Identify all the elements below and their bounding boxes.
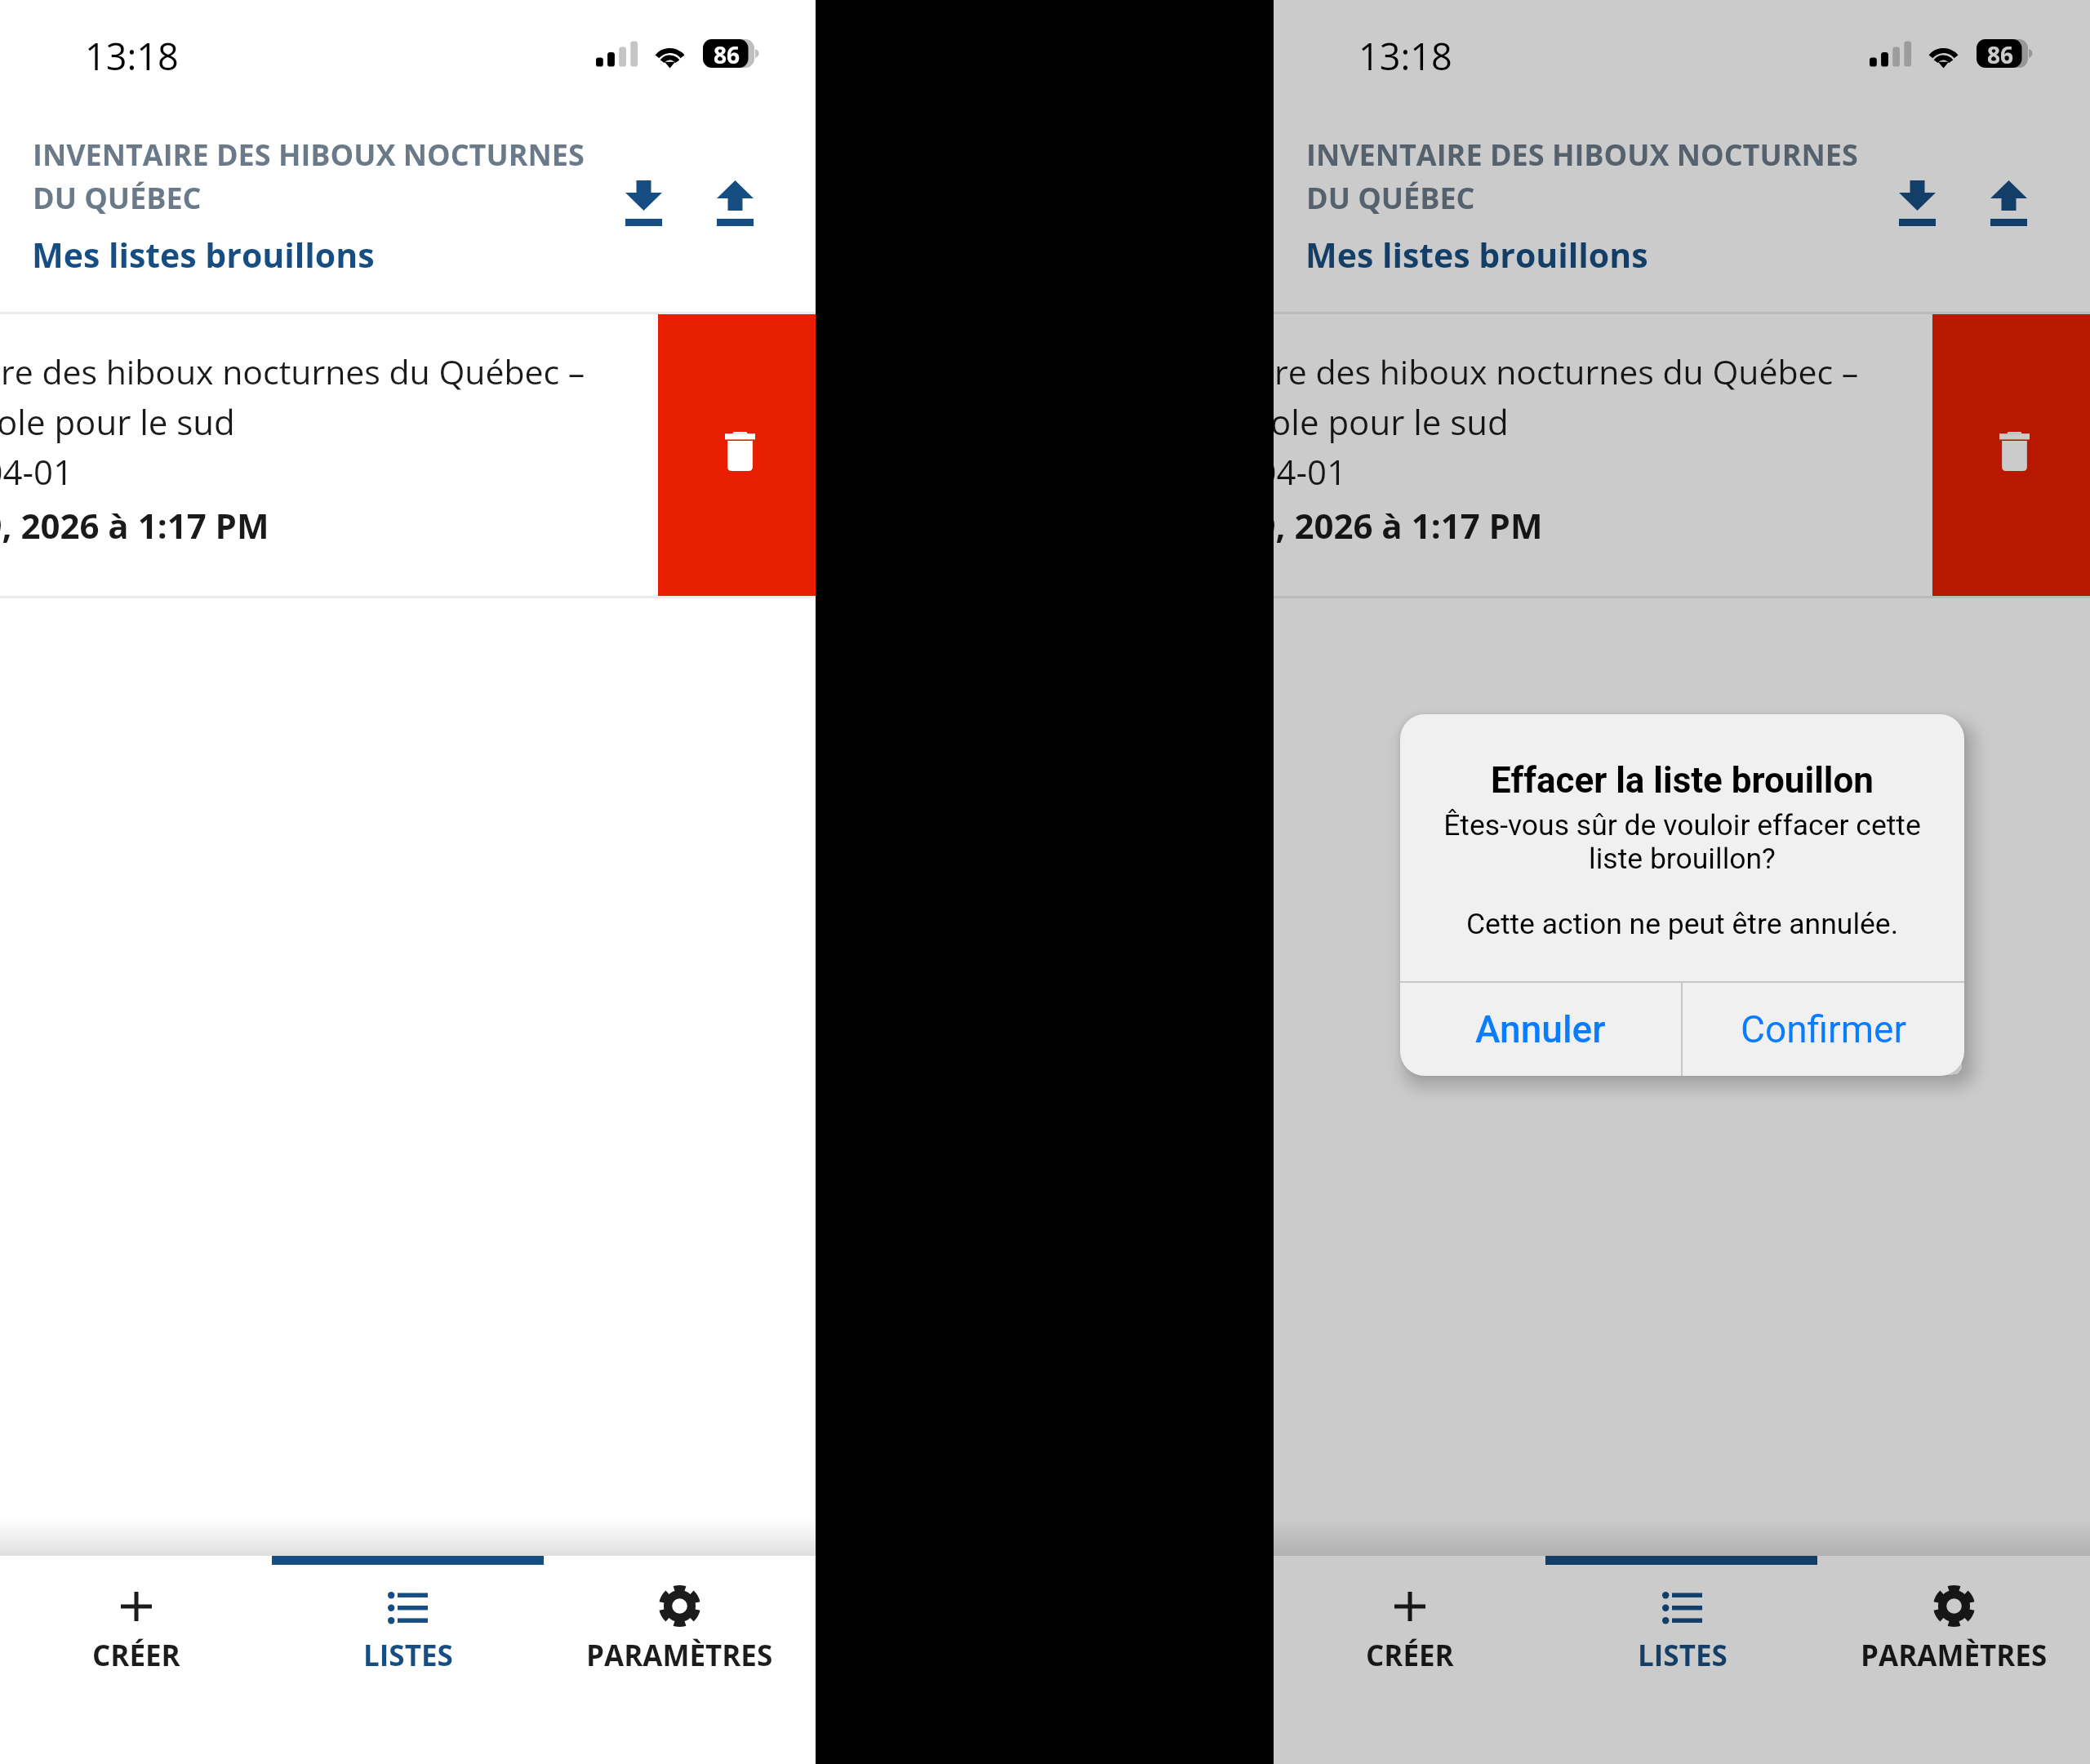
- staticText: INVENTAIRE DES HIBOUX NOCTURNES DU QUÉBE…: [1306, 135, 1858, 217]
- staticText: 13:18: [1358, 31, 1452, 81]
- staticText: Êtes-vous sûr de vouloir effacer cette: [1400, 808, 1964, 842]
- staticText: Avril 9, 2026 à 1:17 PM: [0, 502, 792, 549]
- staticText: liste brouillon?: [1400, 842, 1964, 876]
- staticText: Protocole pour le sud: [0, 398, 790, 445]
- button[interactable]: CRÉER: [1274, 1556, 1546, 1764]
- staticText: 2026-04-01: [1274, 448, 2066, 495]
- staticText: LISTES: [363, 1636, 453, 1675]
- staticText: Mes listes brouillons: [1305, 232, 1648, 278]
- staticText: Avril 9, 2026 à 1:17 PM: [1274, 502, 2066, 549]
- staticText: Inventaire des hiboux nocturnes du Québe…: [0, 349, 774, 394]
- staticText: CRÉER: [92, 1636, 180, 1675]
- button[interactable]: Importer: [1880, 167, 1954, 240]
- staticText: 2026-04-01: [0, 448, 792, 495]
- button[interactable]: LISTES: [1546, 1556, 1818, 1764]
- staticText: Mes listes brouillons: [32, 232, 375, 278]
- button[interactable]: Inventaire des hiboux nocturnes du Québe…: [0, 314, 816, 596]
- button[interactable]: LISTES: [272, 1556, 544, 1764]
- button[interactable]: Inventaire des hiboux nocturnes du Québe…: [1274, 314, 2090, 596]
- button[interactable]: Supprimer: [1932, 314, 2090, 596]
- button[interactable]: Annuler: [1400, 982, 1681, 1076]
- button[interactable]: Confirmer: [1683, 982, 1964, 1076]
- staticText: PARAMÈTRES: [586, 1636, 773, 1675]
- staticText: 86: [714, 39, 740, 70]
- button[interactable]: Exporter: [1972, 167, 2045, 240]
- button[interactable]: Importer: [607, 167, 680, 240]
- staticText: Confirmer: [1741, 1007, 1906, 1051]
- staticText: Inventaire des hiboux nocturnes du Québe…: [1274, 349, 2048, 394]
- staticText: Annuler: [1475, 1007, 1606, 1051]
- button[interactable]: Exporter: [698, 167, 772, 240]
- staticText: PARAMÈTRES: [1861, 1636, 2048, 1675]
- staticText: Effacer la liste brouillon: [1400, 759, 1964, 802]
- staticText: 86: [1987, 39, 2014, 70]
- staticText: CRÉER: [1366, 1636, 1454, 1675]
- staticText: LISTES: [1638, 1636, 1728, 1675]
- button[interactable]: Supprimer: [658, 314, 816, 596]
- staticText: Cette action ne peut être annulée.: [1400, 907, 1964, 941]
- button[interactable]: PARAMÈTRES: [1818, 1556, 2090, 1764]
- staticText: 13:18: [85, 31, 179, 81]
- staticText: INVENTAIRE DES HIBOUX NOCTURNES DU QUÉBE…: [33, 135, 585, 217]
- staticText: Protocole pour le sud: [1274, 398, 2064, 445]
- button[interactable]: CRÉER: [0, 1556, 272, 1764]
- button[interactable]: PARAMÈTRES: [544, 1556, 816, 1764]
